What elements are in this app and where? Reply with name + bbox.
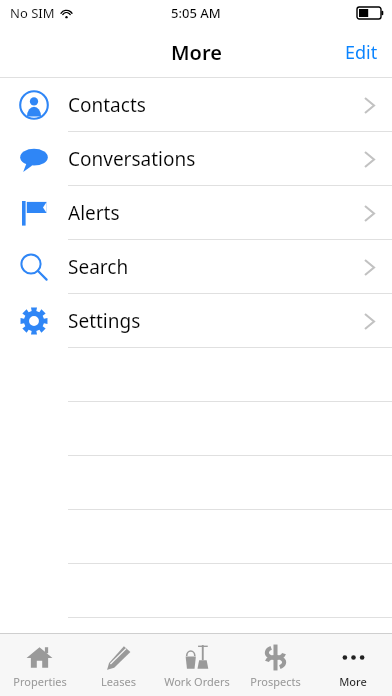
staticText: Prospects bbox=[250, 674, 301, 689]
staticText: Settings bbox=[68, 308, 141, 334]
button[interactable]: Search bbox=[0, 240, 392, 294]
staticText: Leases bbox=[101, 674, 136, 689]
button[interactable]: Prospects bbox=[236, 634, 314, 696]
staticText: No SIM bbox=[10, 4, 55, 22]
staticText: More bbox=[339, 674, 367, 689]
button[interactable]: Contacts bbox=[0, 78, 392, 132]
button[interactable]: Work Orders bbox=[158, 634, 236, 696]
staticText: Alerts bbox=[68, 200, 120, 226]
staticText: Contacts bbox=[68, 92, 146, 118]
button[interactable]: Alerts bbox=[0, 186, 392, 240]
staticText: Edit bbox=[345, 40, 378, 65]
button[interactable]: Settings bbox=[0, 294, 392, 348]
button[interactable]: More bbox=[314, 634, 392, 696]
staticText: Work Orders bbox=[164, 674, 230, 689]
button[interactable]: Edit bbox=[331, 30, 392, 75]
button[interactable]: Properties bbox=[0, 634, 79, 696]
button[interactable]: Leases bbox=[79, 634, 158, 696]
staticText: Properties bbox=[13, 674, 67, 689]
button[interactable]: Conversations bbox=[0, 132, 392, 186]
staticText: Search bbox=[68, 254, 129, 280]
staticText: 5:05 AM bbox=[171, 4, 221, 22]
staticText: Conversations bbox=[68, 146, 196, 172]
staticText: More bbox=[171, 39, 222, 66]
